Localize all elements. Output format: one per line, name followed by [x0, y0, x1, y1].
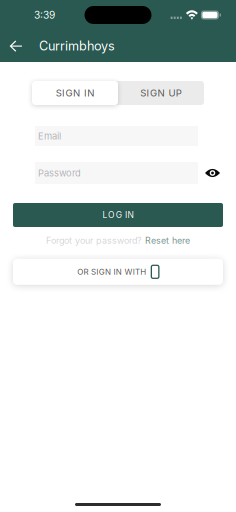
staticText: Reset here [145, 235, 190, 246]
button[interactable]: Show password [198, 162, 227, 184]
staticText: Currimbhoys [39, 38, 115, 54]
button[interactable]: LOG IN [13, 203, 223, 227]
staticText: Email [38, 130, 61, 142]
staticText: SIGN IN [56, 87, 94, 99]
button[interactable]: Reset here [145, 235, 190, 246]
staticText: SIGN UP [140, 87, 182, 99]
staticText: Forgot your password? [46, 235, 142, 246]
staticText: LOG IN [102, 210, 133, 220]
staticText: OR SIGN IN WITH [77, 267, 146, 277]
staticText: Password [38, 167, 81, 179]
button[interactable]: Back [0, 30, 32, 62]
button[interactable]: SIGN IN [32, 81, 118, 105]
button[interactable]: OR SIGN IN WITH [13, 259, 223, 285]
staticText: 3:39 [34, 9, 55, 21]
button[interactable]: SIGN UP [118, 81, 204, 105]
